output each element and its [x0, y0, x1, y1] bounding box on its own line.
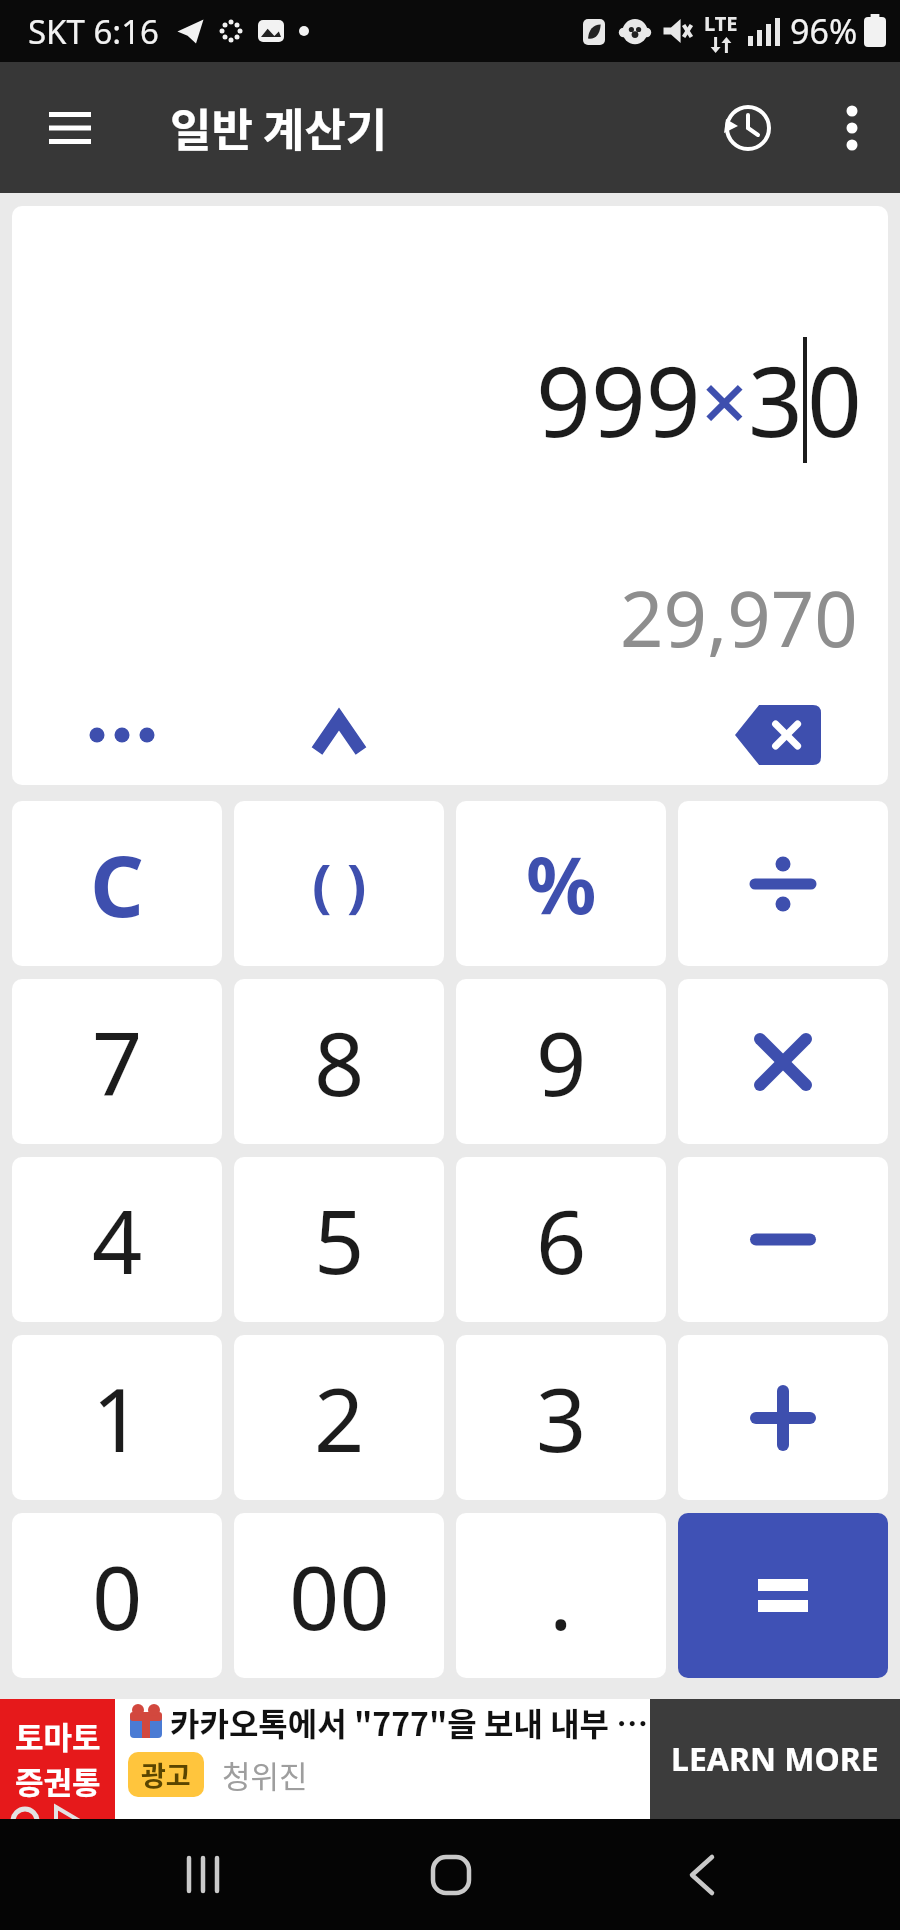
button[interactable] [678, 1513, 888, 1678]
staticText: 카카오톡에서 "777"을 보내 내부 … [170, 1699, 649, 1745]
button[interactable]: 토마토 [0, 1699, 900, 1819]
button[interactable] [396, 1819, 506, 1930]
button[interactable] [67, 700, 177, 770]
staticText: % [526, 831, 597, 937]
button[interactable]: 00 [234, 1513, 444, 1678]
staticText: 5 [314, 1180, 365, 1300]
button[interactable] [28, 86, 112, 170]
button[interactable]: 1 [12, 1335, 222, 1500]
button[interactable]: 2 [234, 1335, 444, 1500]
button[interactable] [678, 1335, 888, 1500]
staticText: 0 [92, 1536, 143, 1656]
staticText: LTE [704, 10, 738, 37]
staticText: 증권통 [15, 1758, 101, 1803]
staticText: 일반 계산기 [170, 95, 388, 160]
button[interactable] [678, 1157, 888, 1322]
button[interactable] [678, 979, 888, 1144]
button[interactable] [712, 92, 784, 164]
staticText: SKT 6:16 [28, 9, 159, 54]
button[interactable]: 5 [234, 1157, 444, 1322]
button[interactable]: 0 [12, 1513, 222, 1678]
staticText: 9 [536, 1002, 587, 1122]
button[interactable] [723, 695, 833, 775]
button[interactable] [647, 1819, 757, 1930]
button[interactable]: 7 [12, 979, 222, 1144]
button[interactable]: 3 [456, 1335, 666, 1500]
staticText: ( ) [312, 844, 367, 923]
button[interactable] [678, 801, 888, 966]
button[interactable]: % [456, 801, 666, 966]
staticText: . [549, 1536, 573, 1656]
staticText: 7 [92, 1002, 143, 1122]
staticText: 6 [536, 1180, 587, 1300]
button[interactable] [284, 700, 394, 770]
staticText: 96% [790, 8, 858, 54]
button[interactable]: . [456, 1513, 666, 1678]
staticText: 8 [314, 1002, 365, 1122]
staticText: C [90, 827, 144, 941]
button[interactable] [822, 98, 882, 158]
staticText: 999 [536, 334, 701, 465]
button[interactable]: 6 [456, 1157, 666, 1322]
staticText: 광고 [141, 1755, 191, 1794]
staticText: 4 [92, 1180, 143, 1300]
button[interactable] [148, 1819, 258, 1930]
staticText: 0 [807, 334, 862, 465]
staticText: 1 [92, 1358, 143, 1478]
button[interactable]: 9 [456, 979, 666, 1144]
staticText: 3 [748, 334, 803, 465]
staticText: 토마토 [15, 1713, 101, 1758]
staticText: × [701, 344, 748, 456]
staticText: 00 [289, 1536, 390, 1656]
button[interactable]: ( ) [234, 801, 444, 966]
staticText: 청위진 [222, 1752, 308, 1797]
button[interactable]: 4 [12, 1157, 222, 1322]
staticText: 29,970 [620, 566, 858, 670]
button[interactable]: LEARN MORE [650, 1699, 900, 1819]
button[interactable]: 8 [234, 979, 444, 1144]
button[interactable]: C [12, 801, 222, 966]
staticText: LEARN MORE [671, 1737, 879, 1781]
staticText: 2 [314, 1358, 365, 1478]
staticText: 3 [536, 1358, 587, 1478]
